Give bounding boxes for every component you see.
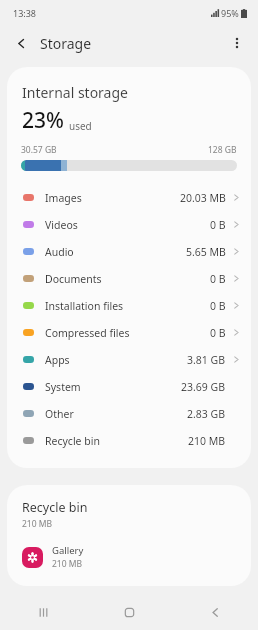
staticText: 2.83 GB [187, 407, 226, 421]
button[interactable]: More options [222, 28, 252, 58]
staticText: Gallery [52, 544, 84, 557]
button[interactable]: Recent apps [21, 595, 65, 630]
button[interactable]: Other [7, 400, 251, 427]
staticText: 3.81 GB [187, 353, 226, 367]
staticText: Audio [45, 245, 74, 259]
staticText: 210 MB [52, 558, 83, 570]
staticText: Documents [45, 272, 102, 286]
staticText: 0 B [210, 299, 226, 313]
staticText: 20.03 MB [180, 191, 226, 205]
staticText: 5.65 MB [186, 245, 226, 259]
staticText: 210 MB [22, 518, 53, 530]
staticText: Recycle bin [45, 434, 100, 448]
staticText: Storage [40, 34, 92, 53]
staticText: Images [45, 191, 82, 205]
staticText: 210 MB [188, 434, 226, 448]
button[interactable]: System [7, 373, 251, 400]
staticText: used [69, 119, 92, 133]
button[interactable]: Apps [7, 346, 251, 373]
button[interactable]: Compressed files [7, 319, 251, 346]
staticText: 23% [22, 106, 64, 135]
staticText: 0 B [210, 218, 226, 232]
button[interactable]: Videos [7, 211, 251, 238]
button[interactable]: Audio [7, 238, 251, 265]
staticText: 30.57 GB [21, 144, 57, 156]
button[interactable]: Documents [7, 265, 251, 292]
button[interactable]: Back [193, 595, 237, 630]
button[interactable]: Recycle bin [7, 427, 251, 454]
staticText: Other [45, 407, 74, 421]
staticText: Internal storage [22, 83, 128, 102]
button[interactable]: Images [7, 184, 251, 211]
staticText: Compressed files [45, 326, 130, 340]
staticText: Videos [45, 218, 78, 232]
staticText: Installation files [45, 299, 124, 313]
staticText: System [45, 380, 81, 394]
button[interactable]: Back [6, 28, 36, 58]
staticText: 23.69 GB [181, 380, 226, 394]
staticText: 13:38 [13, 7, 37, 19]
button[interactable]: Recycle bin [7, 485, 251, 586]
staticText: 0 B [210, 326, 226, 340]
staticText: 0 B [210, 272, 226, 286]
button[interactable]: Home [107, 595, 151, 630]
button[interactable]: Installation files [7, 292, 251, 319]
staticText: 128 GB [208, 144, 237, 156]
staticText: Apps [45, 353, 70, 367]
staticText: 95% [221, 7, 239, 19]
staticText: Recycle bin [22, 499, 88, 516]
